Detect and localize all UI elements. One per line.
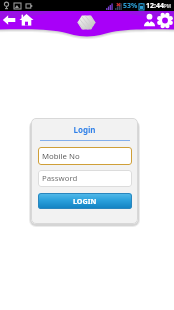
- button[interactable]: LOGIN: [38, 193, 132, 209]
- staticText: Password: [42, 173, 78, 184]
- button[interactable]: Password: [38, 170, 132, 187]
- staticText: PM: [164, 3, 172, 9]
- button[interactable]: Settings: [157, 13, 173, 28]
- button[interactable]: Profile: [142, 13, 157, 27]
- staticText: LOGIN: [73, 196, 97, 206]
- button[interactable]: Mobile No: [38, 147, 132, 165]
- staticText: Mobile No: [42, 151, 80, 162]
- staticText: Login: [31, 124, 138, 135]
- staticText: 53%: [123, 1, 138, 11]
- staticText: 12:44: [146, 1, 164, 11]
- button[interactable]: Home: [19, 13, 34, 27]
- button[interactable]: Back: [2, 14, 16, 26]
